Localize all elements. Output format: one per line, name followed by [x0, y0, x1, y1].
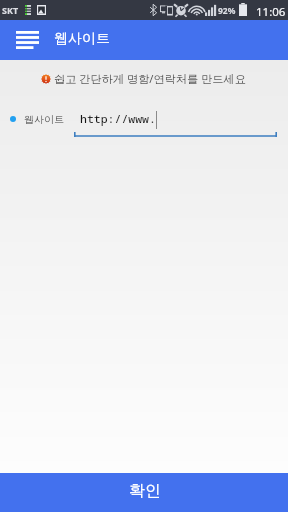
staticText: 웹사이트 [54, 30, 110, 48]
button[interactable]: http://www. [74, 105, 277, 137]
staticText: SKT [2, 4, 19, 16]
button[interactable]: 웹사이트 [6, 108, 68, 130]
staticText: 92% [218, 5, 236, 17]
staticText: 11:06 [256, 4, 286, 20]
staticText: 웹사이트 [24, 113, 64, 126]
button[interactable]: Menu [12, 20, 42, 60]
button[interactable]: 확인 [0, 473, 288, 512]
staticText: 확인 [129, 481, 161, 501]
staticText: 쉽고 간단하게 명함/연락처를 만드세요 [54, 71, 246, 86]
staticText: http://www. [80, 111, 156, 127]
